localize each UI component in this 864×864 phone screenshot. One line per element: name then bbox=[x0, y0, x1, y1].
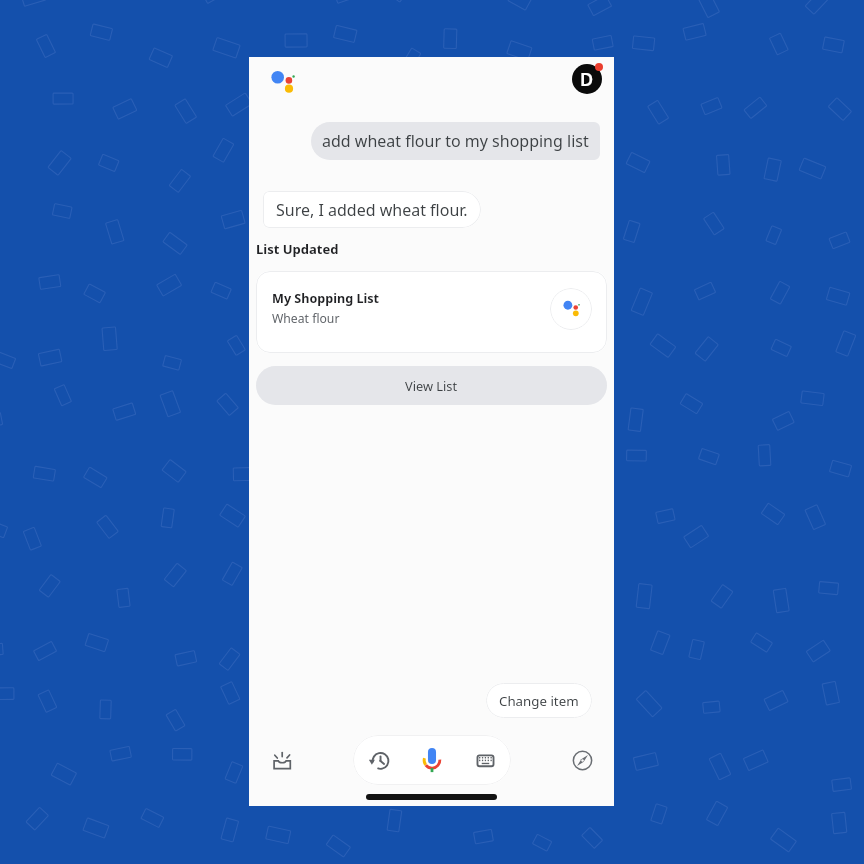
button[interactable]: Change item bbox=[486, 683, 592, 718]
button[interactable]: Explore bbox=[570, 748, 595, 773]
staticText: View List bbox=[405, 377, 458, 394]
staticText: Change item bbox=[499, 692, 579, 710]
button[interactable]: Snapshot bbox=[272, 750, 294, 772]
button[interactable]: My Shopping List bbox=[256, 271, 607, 353]
staticText: add wheat flour to my shopping list bbox=[322, 130, 589, 152]
button[interactable]: Sure, I added wheat flour. bbox=[263, 191, 481, 228]
button[interactable]: History bbox=[367, 748, 392, 773]
button[interactable]: add wheat flour to my shopping list bbox=[311, 122, 600, 160]
button[interactable]: Account bbox=[572, 64, 602, 94]
staticText: Sure, I added wheat flour. bbox=[276, 199, 468, 221]
button[interactable]: Keyboard bbox=[473, 748, 498, 773]
staticText: D bbox=[580, 67, 594, 92]
staticText: Wheat flour bbox=[272, 310, 340, 327]
staticText: List Updated bbox=[256, 240, 339, 258]
button[interactable]: Assistant bbox=[265, 64, 295, 94]
button[interactable]: Microphone bbox=[421, 747, 443, 775]
staticText: My Shopping List bbox=[272, 290, 380, 307]
button[interactable]: View List bbox=[256, 366, 607, 405]
